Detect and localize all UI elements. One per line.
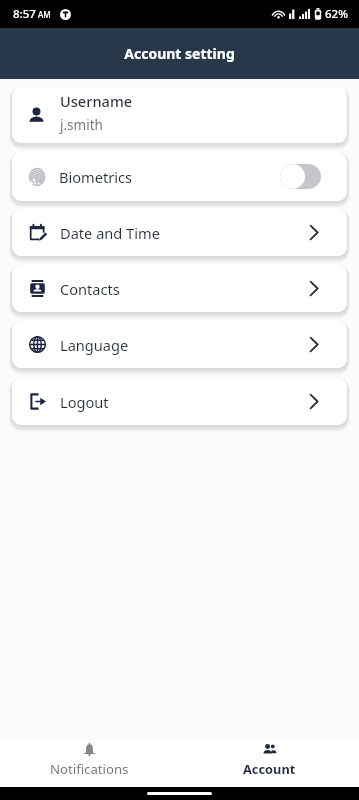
staticText: 8:57 [13, 6, 36, 22]
button[interactable]: Account [179, 740, 359, 787]
staticText: Username [60, 91, 133, 111]
staticText: Account setting [124, 44, 235, 63]
button[interactable]: Language [12, 321, 347, 368]
button[interactable]: Contacts [12, 265, 347, 312]
staticText: j.smith [60, 116, 103, 134]
staticText: Biometrics [59, 167, 133, 187]
button[interactable]: Username [12, 87, 347, 143]
button[interactable]: Logout [12, 378, 347, 425]
staticText: Logout [60, 392, 109, 412]
button[interactable]: Notifications [0, 740, 179, 787]
staticText: Date and Time [60, 223, 160, 243]
staticText: AM [38, 9, 51, 20]
button[interactable]: Biometrics toggle [280, 164, 321, 189]
staticText: Account [243, 760, 296, 777]
staticText: Contacts [60, 279, 120, 299]
button[interactable]: Date and Time [12, 209, 347, 256]
button[interactable]: Biometrics [12, 152, 347, 201]
staticText: Notifications [50, 760, 129, 778]
staticText: Language [60, 335, 129, 355]
staticText: 62% [325, 6, 348, 22]
